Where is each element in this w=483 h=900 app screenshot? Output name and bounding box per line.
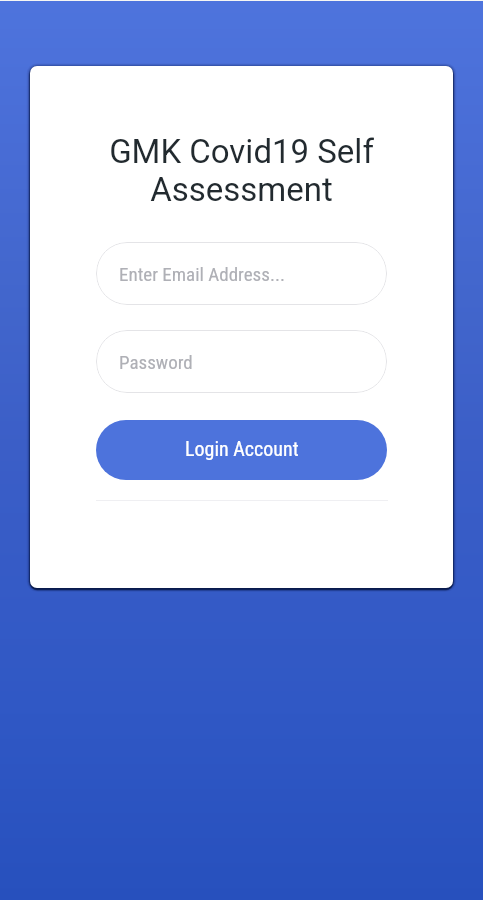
- staticText: GMK Covid19 Self Assessment: [70, 132, 413, 210]
- staticText: Enter Email Address...: [119, 263, 285, 285]
- staticText: Login Account: [185, 437, 299, 460]
- button[interactable]: Login Account: [96, 420, 387, 480]
- staticText: Password: [119, 351, 193, 373]
- button[interactable]: Enter Email Address...: [96, 242, 387, 305]
- button[interactable]: Password: [96, 330, 387, 393]
